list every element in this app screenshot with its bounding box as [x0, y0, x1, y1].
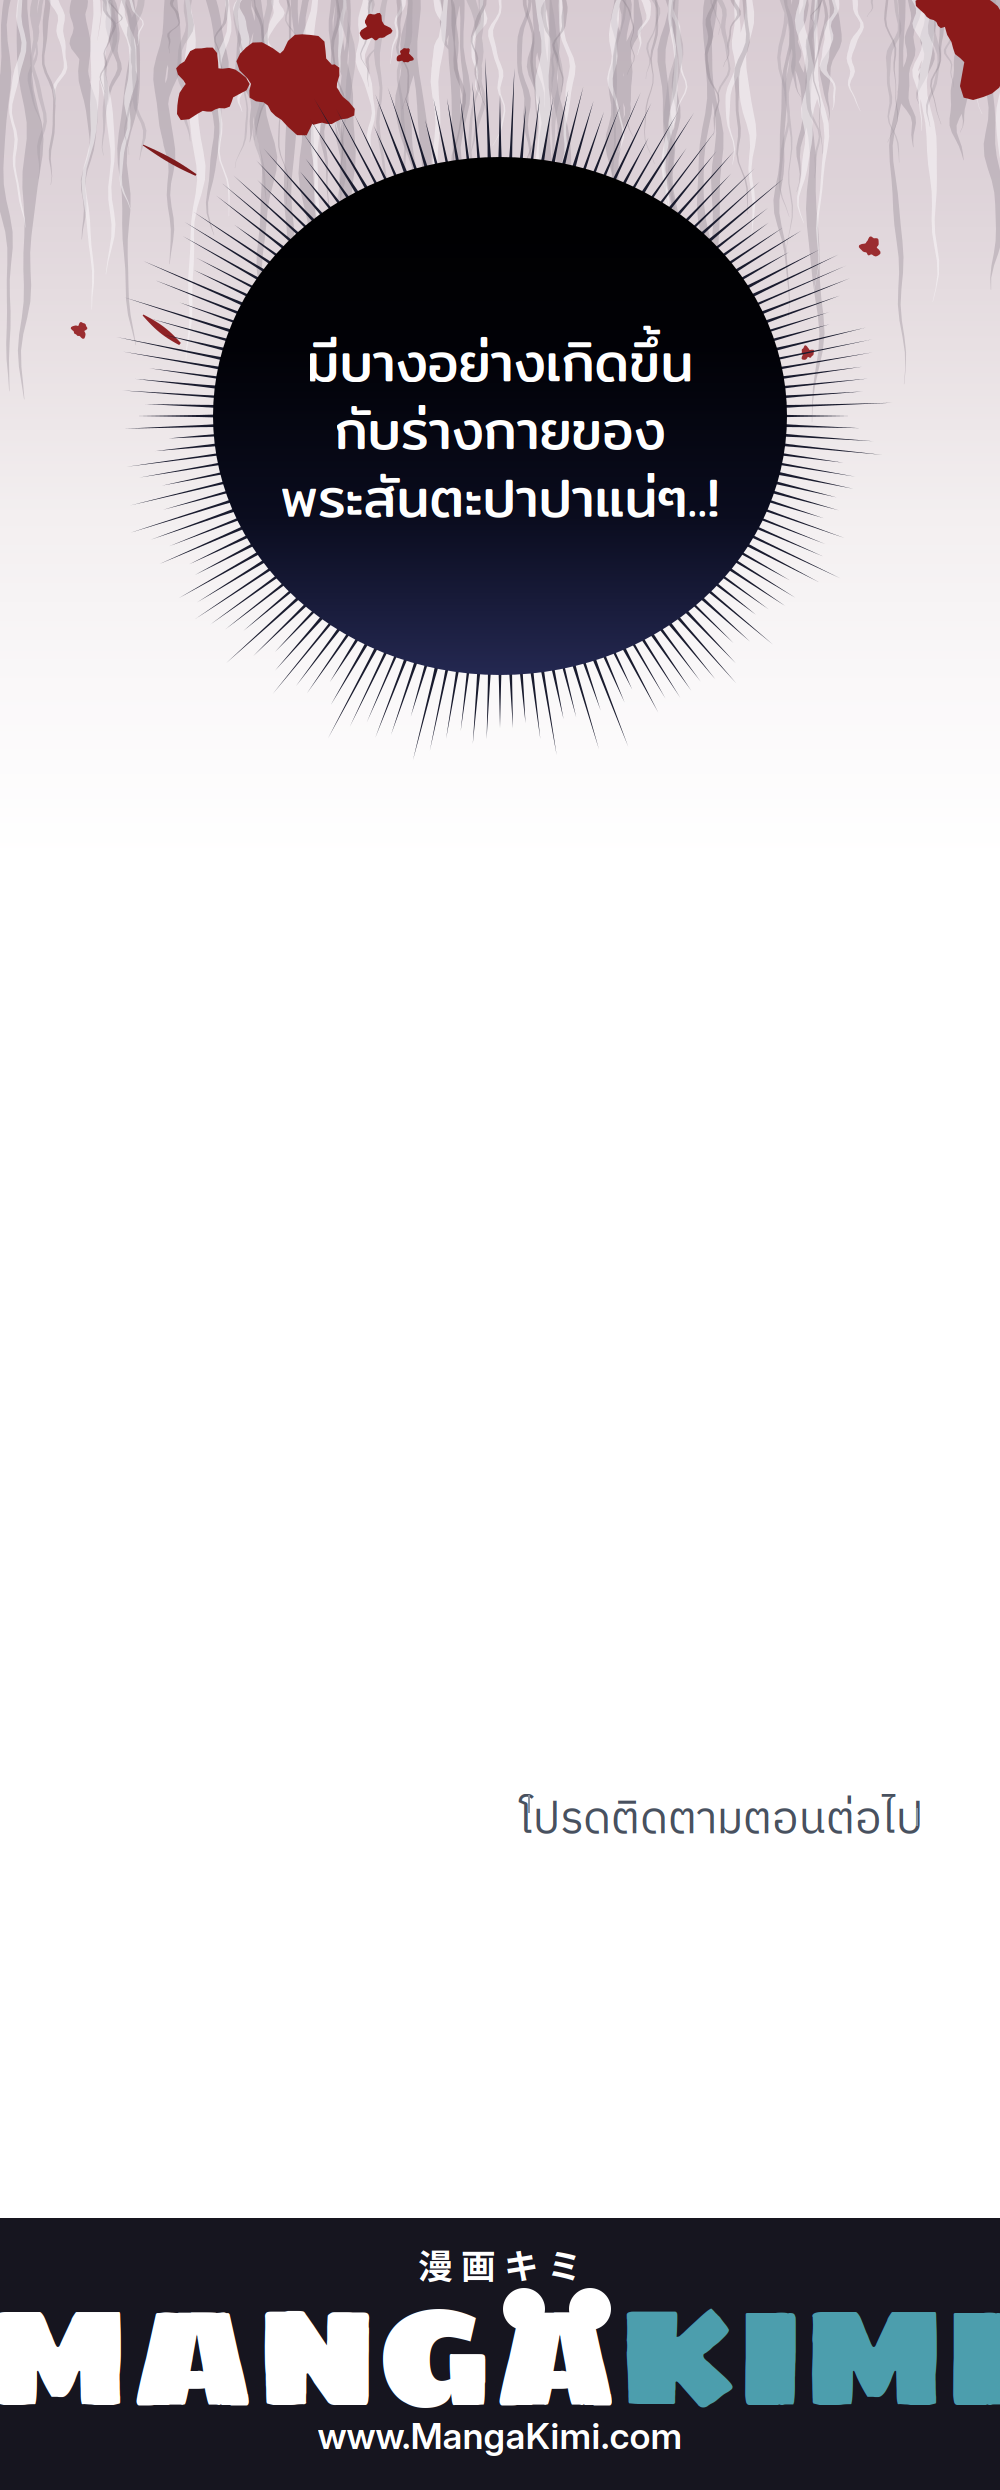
staticText: โปรดติดตามตอนต่อไป — [519, 1784, 923, 1856]
staticText: MANGA — [0, 2242, 619, 2469]
staticText: www.MangaKimi.com — [317, 2414, 682, 2458]
staticText: มีบางอย่างเกิดขึ้น — [306, 320, 693, 404]
staticText: KIMI — [619, 2242, 1000, 2469]
staticText: กับร่างกายของ — [334, 388, 665, 471]
staticText: พระสันตะปาปาแน่ๆ..! — [280, 455, 719, 539]
staticText: 漫 画 キ ミ — [418, 2239, 582, 2289]
